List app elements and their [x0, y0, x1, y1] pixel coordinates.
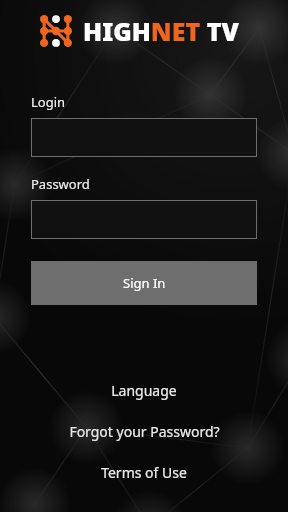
button[interactable]: Language — [0, 379, 288, 402]
button[interactable] — [31, 118, 257, 157]
staticText: Password — [31, 175, 90, 193]
button[interactable]: Forgot your Password? — [0, 420, 288, 443]
button[interactable]: Sign In — [31, 261, 257, 305]
staticText: HIGHNET TV — [83, 14, 239, 48]
button[interactable] — [31, 200, 257, 239]
staticText: Sign In — [123, 274, 166, 292]
staticText: Terms of Use — [101, 463, 187, 482]
staticText: Language — [111, 381, 177, 400]
button[interactable]: Terms of Use — [0, 461, 288, 484]
other: HighNet TV logo — [38, 13, 74, 49]
staticText: Login — [31, 93, 66, 111]
staticText: Forgot your Password? — [69, 422, 220, 441]
